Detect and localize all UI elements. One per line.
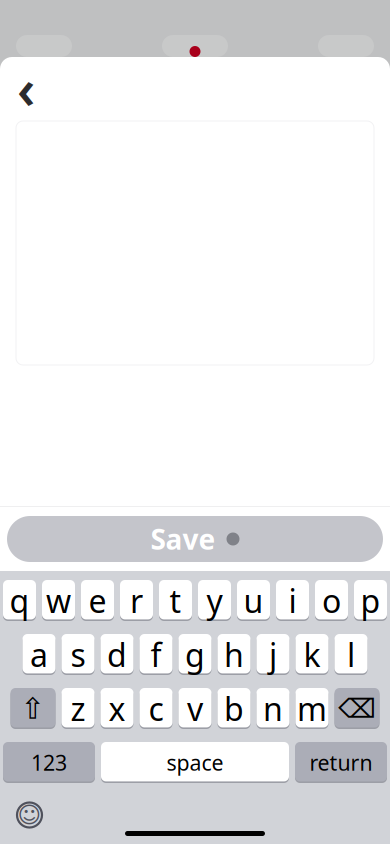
button[interactable]: Emoji keyboard — [7, 792, 52, 837]
button[interactable]: k — [295, 634, 328, 675]
button[interactable]: q — [3, 580, 36, 621]
staticText: h — [224, 633, 244, 676]
button[interactable]: return — [295, 742, 387, 783]
staticText: t — [169, 579, 181, 622]
button[interactable]: j — [256, 634, 289, 675]
button[interactable]: 123 — [3, 742, 95, 783]
button[interactable]: y — [198, 580, 231, 621]
button[interactable]: Save — [0, 507, 390, 571]
button[interactable]: p — [354, 580, 387, 621]
button[interactable]: Back — [4, 65, 48, 111]
button[interactable]: i — [276, 580, 309, 621]
button[interactable]: v — [178, 688, 211, 729]
staticText: Save — [150, 520, 215, 558]
staticText: g — [185, 633, 205, 676]
staticText: l — [347, 633, 355, 676]
staticText: ⇧ — [20, 692, 45, 725]
button[interactable]: l — [334, 634, 367, 675]
staticText: q — [9, 579, 29, 622]
button[interactable]: u — [237, 580, 270, 621]
staticText: d — [107, 633, 127, 676]
staticText: a — [30, 633, 48, 676]
staticText: 123 — [31, 748, 67, 777]
staticText: i — [288, 579, 296, 622]
button[interactable]: x — [100, 688, 133, 729]
button[interactable]: m — [295, 688, 328, 729]
button[interactable]: b — [217, 688, 250, 729]
staticText: x — [108, 687, 125, 730]
staticText: c — [148, 687, 163, 730]
button[interactable]: c — [139, 688, 172, 729]
staticText: f — [150, 633, 161, 676]
staticText: r — [130, 579, 143, 622]
button[interactable]: z — [61, 688, 94, 729]
button[interactable]: d — [100, 634, 133, 675]
staticText: v — [187, 687, 203, 730]
button[interactable]: s — [61, 634, 94, 675]
staticText: k — [303, 633, 320, 676]
staticText: j — [269, 633, 277, 676]
button[interactable]: h — [217, 634, 250, 675]
staticText: ⌫ — [338, 693, 376, 724]
staticText: ☺ — [17, 802, 41, 828]
staticText: return — [309, 748, 372, 777]
staticText: o — [322, 579, 341, 622]
staticText: e — [88, 579, 106, 622]
staticText: space — [166, 748, 223, 777]
staticText: s — [70, 633, 85, 676]
button[interactable]: r — [120, 580, 153, 621]
button[interactable]: w — [42, 580, 75, 621]
staticText: b — [224, 687, 244, 730]
button[interactable]: space — [101, 742, 289, 783]
button[interactable]: n — [256, 688, 289, 729]
staticText: u — [243, 579, 263, 622]
button[interactable]: g — [178, 634, 211, 675]
button[interactable]: Delete — [334, 688, 379, 729]
staticText: m — [297, 687, 327, 730]
button[interactable]: t — [159, 580, 192, 621]
staticText: p — [360, 579, 380, 622]
button[interactable]: o — [315, 580, 348, 621]
button[interactable]: Shift — [10, 688, 55, 729]
button[interactable]: e — [81, 580, 114, 621]
button[interactable]: f — [139, 634, 172, 675]
staticText: z — [70, 687, 85, 730]
staticText: y — [206, 579, 222, 622]
staticText: w — [46, 579, 71, 622]
button[interactable]: a — [22, 634, 55, 675]
staticText: n — [263, 687, 283, 730]
staticText: ‹ — [17, 53, 35, 123]
